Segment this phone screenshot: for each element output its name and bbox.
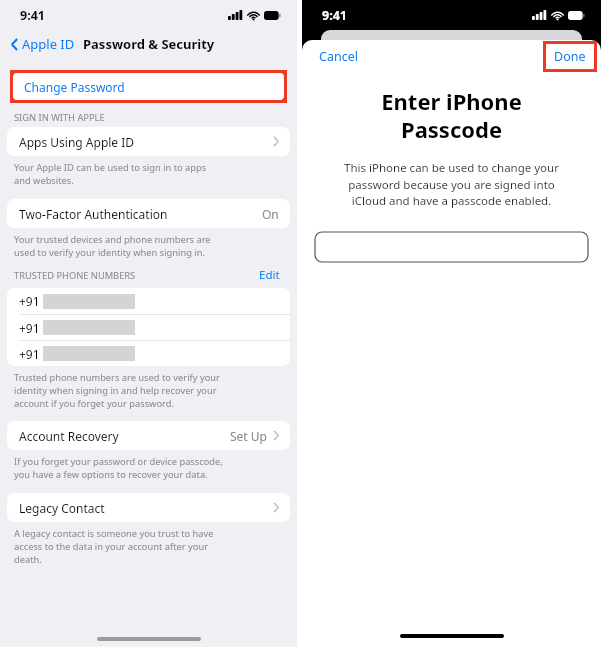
staticText: Legacy Contact bbox=[19, 500, 105, 516]
staticText: Account Recovery bbox=[19, 428, 119, 444]
button[interactable]: Edit bbox=[257, 266, 282, 284]
button[interactable]: Account Recovery bbox=[7, 421, 290, 450]
button[interactable]: +91 bbox=[7, 341, 290, 366]
staticText: Your trusted devices and phone numbers a… bbox=[14, 233, 211, 259]
staticText: +91 bbox=[19, 346, 40, 362]
staticText: TRUSTED PHONE NUMBERS bbox=[14, 269, 136, 282]
staticText: Enter iPhone Passcode bbox=[322, 86, 581, 144]
staticText: Apps Using Apple ID bbox=[19, 134, 135, 150]
button[interactable]: Done bbox=[546, 44, 594, 69]
staticText: +91 bbox=[19, 320, 40, 336]
staticText: Trusted phone numbers are used to verify… bbox=[14, 371, 220, 410]
staticText: Edit bbox=[259, 267, 280, 283]
staticText: Your Apple ID can be used to sign in to … bbox=[14, 161, 207, 187]
staticText: This iPhone can be used to change your p… bbox=[318, 160, 585, 208]
button[interactable]: Legacy Contact bbox=[7, 493, 290, 522]
button[interactable]: +91 bbox=[7, 315, 290, 340]
staticText: Change Password bbox=[24, 79, 125, 95]
button[interactable]: Passcode entry field bbox=[315, 232, 588, 262]
button[interactable]: Apple ID bbox=[8, 35, 78, 53]
button[interactable]: Two-Factor Authentication bbox=[7, 199, 290, 228]
staticText: Password & Security bbox=[83, 35, 215, 53]
button[interactable]: Cancel bbox=[316, 45, 361, 68]
staticText: 9:41 bbox=[20, 7, 45, 24]
staticText: Apple ID bbox=[22, 35, 75, 53]
button[interactable]: Apps Using Apple ID bbox=[7, 127, 290, 156]
staticText: 9:41 bbox=[322, 7, 347, 24]
staticText: Done bbox=[554, 48, 586, 65]
staticText: If you forget your password or device pa… bbox=[14, 455, 223, 481]
staticText: Two-Factor Authentication bbox=[19, 206, 168, 222]
staticText: SIGN IN WITH APPLE bbox=[14, 111, 105, 124]
staticText: Cancel bbox=[319, 48, 358, 65]
staticText: On bbox=[262, 206, 279, 222]
button[interactable]: Change Password bbox=[13, 73, 284, 100]
staticText: A legacy contact is someone you trust to… bbox=[14, 527, 214, 566]
button[interactable]: +91 bbox=[7, 288, 290, 314]
staticText: Set Up bbox=[230, 428, 267, 444]
staticText: +91 bbox=[19, 293, 40, 309]
